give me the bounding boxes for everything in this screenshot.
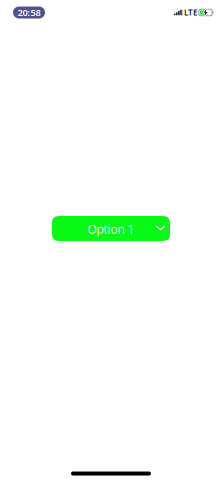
staticText: Option 1 bbox=[87, 221, 134, 237]
staticText: 20:58 bbox=[17, 6, 40, 19]
staticText: LTE bbox=[184, 7, 197, 18]
button[interactable]: Option 1 bbox=[52, 216, 170, 241]
